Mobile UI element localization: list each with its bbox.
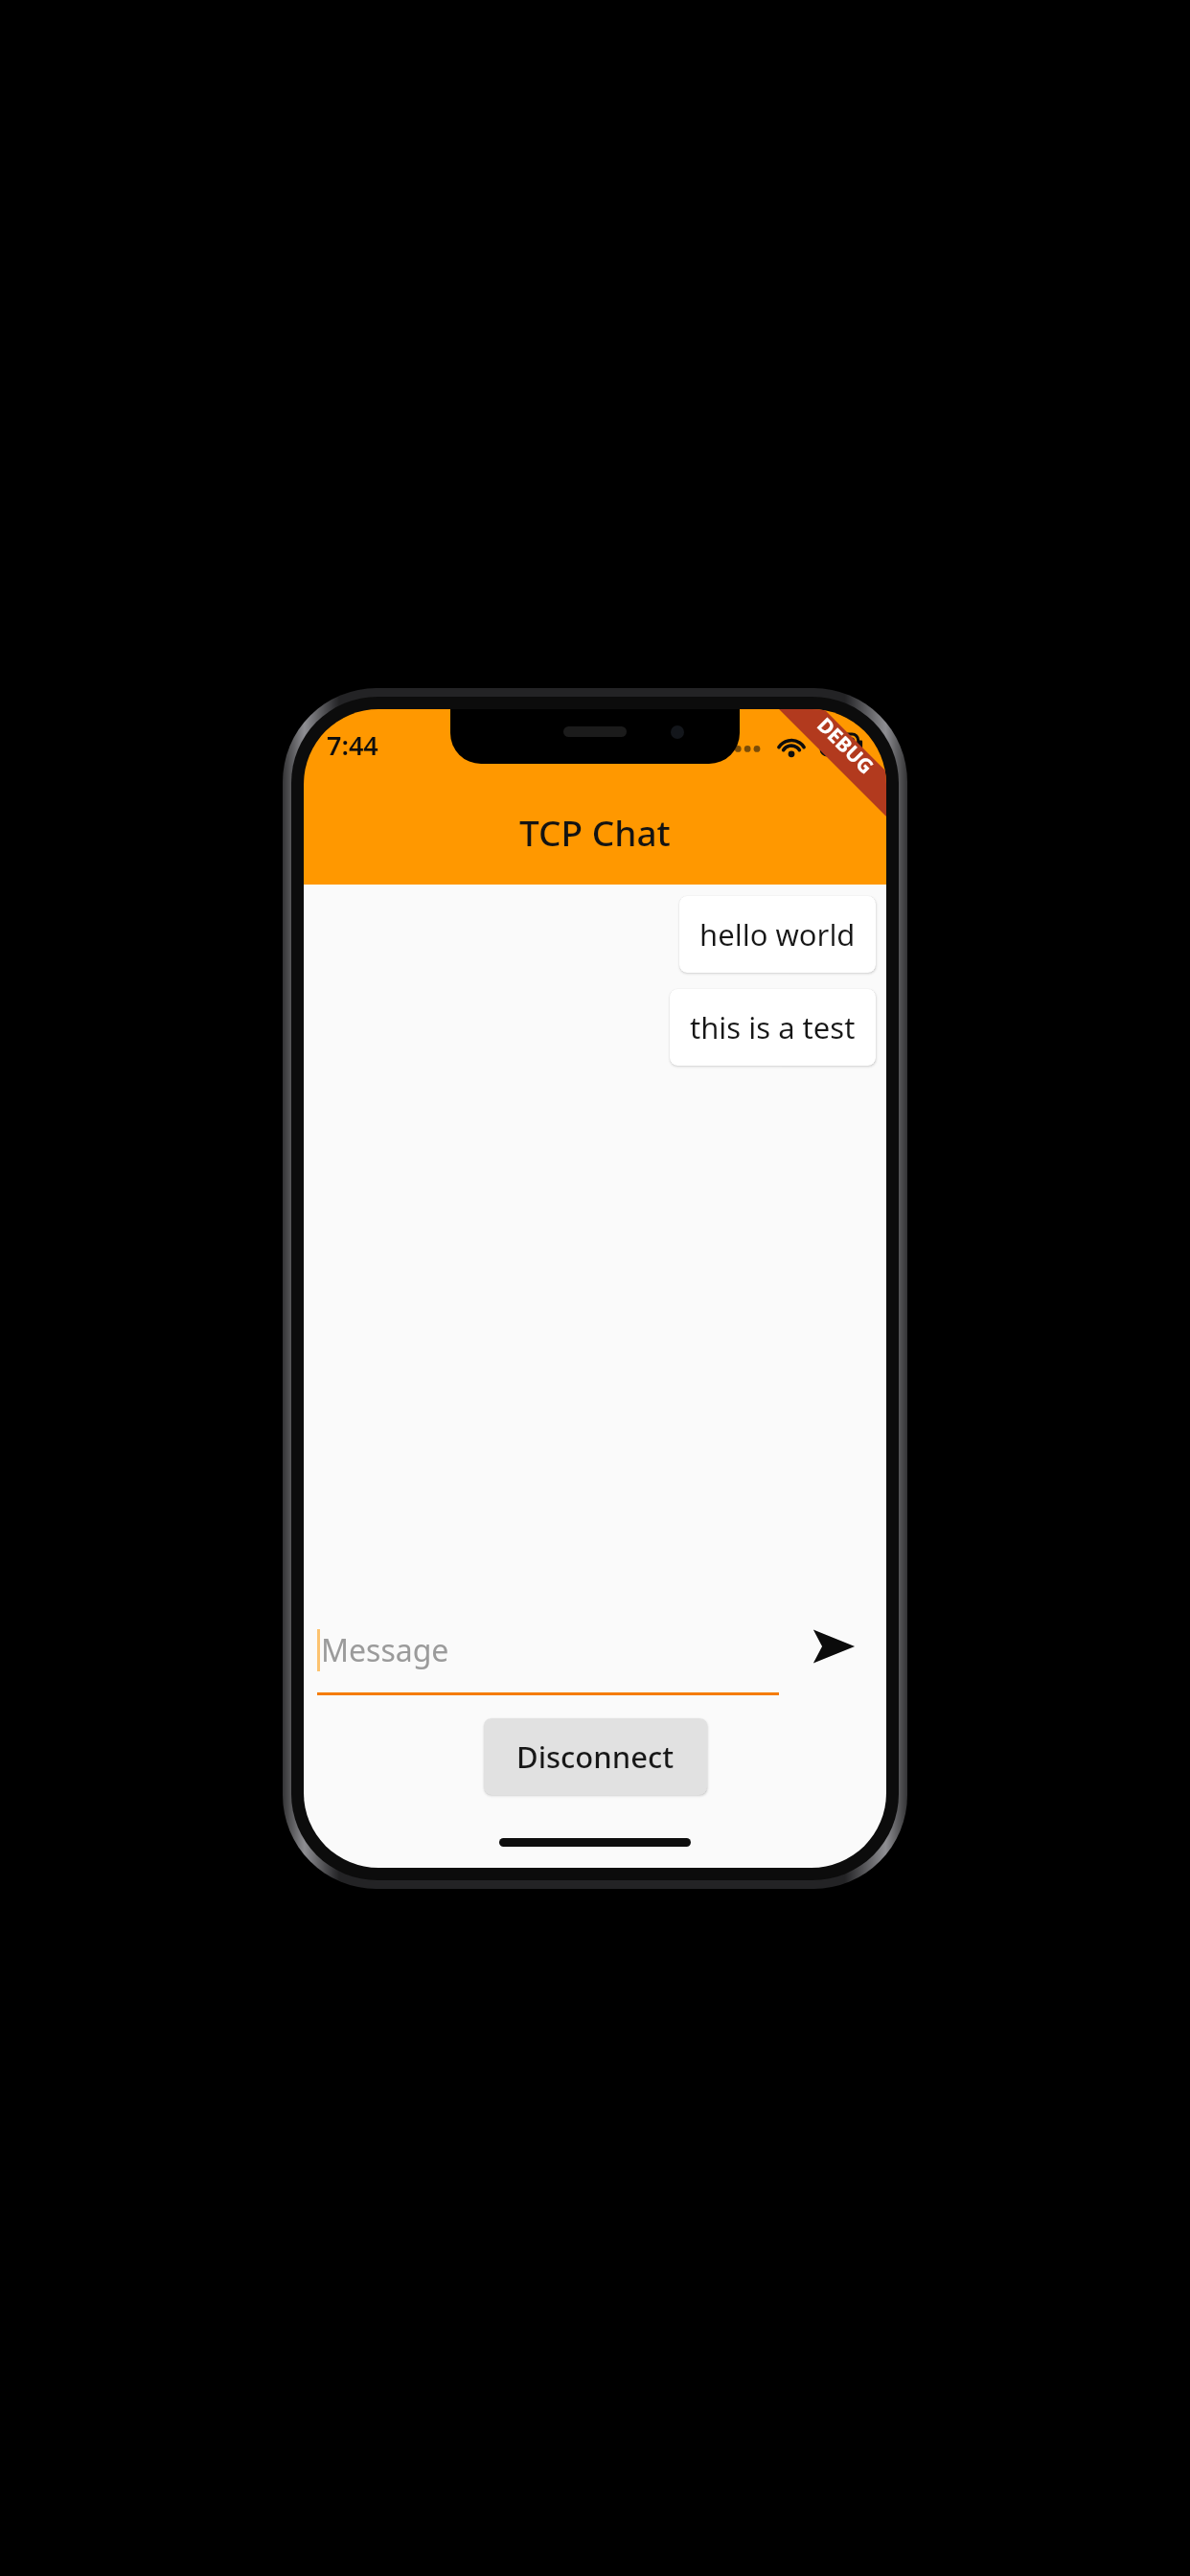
- staticText: Disconnect: [516, 1736, 675, 1777]
- staticText: Message: [321, 1629, 449, 1671]
- staticText: hello world: [699, 914, 856, 954]
- button[interactable]: Message: [317, 1594, 779, 1718]
- staticText: this is a test: [690, 1007, 856, 1047]
- staticText: TCP Chat: [519, 808, 671, 856]
- staticText: 7:44: [327, 727, 378, 763]
- button[interactable]: Send: [804, 1617, 863, 1676]
- button[interactable]: hello world: [679, 896, 876, 973]
- button[interactable]: this is a test: [670, 989, 876, 1066]
- staticText: DEBUG: [811, 711, 880, 781]
- button[interactable]: Disconnect: [484, 1718, 707, 1795]
